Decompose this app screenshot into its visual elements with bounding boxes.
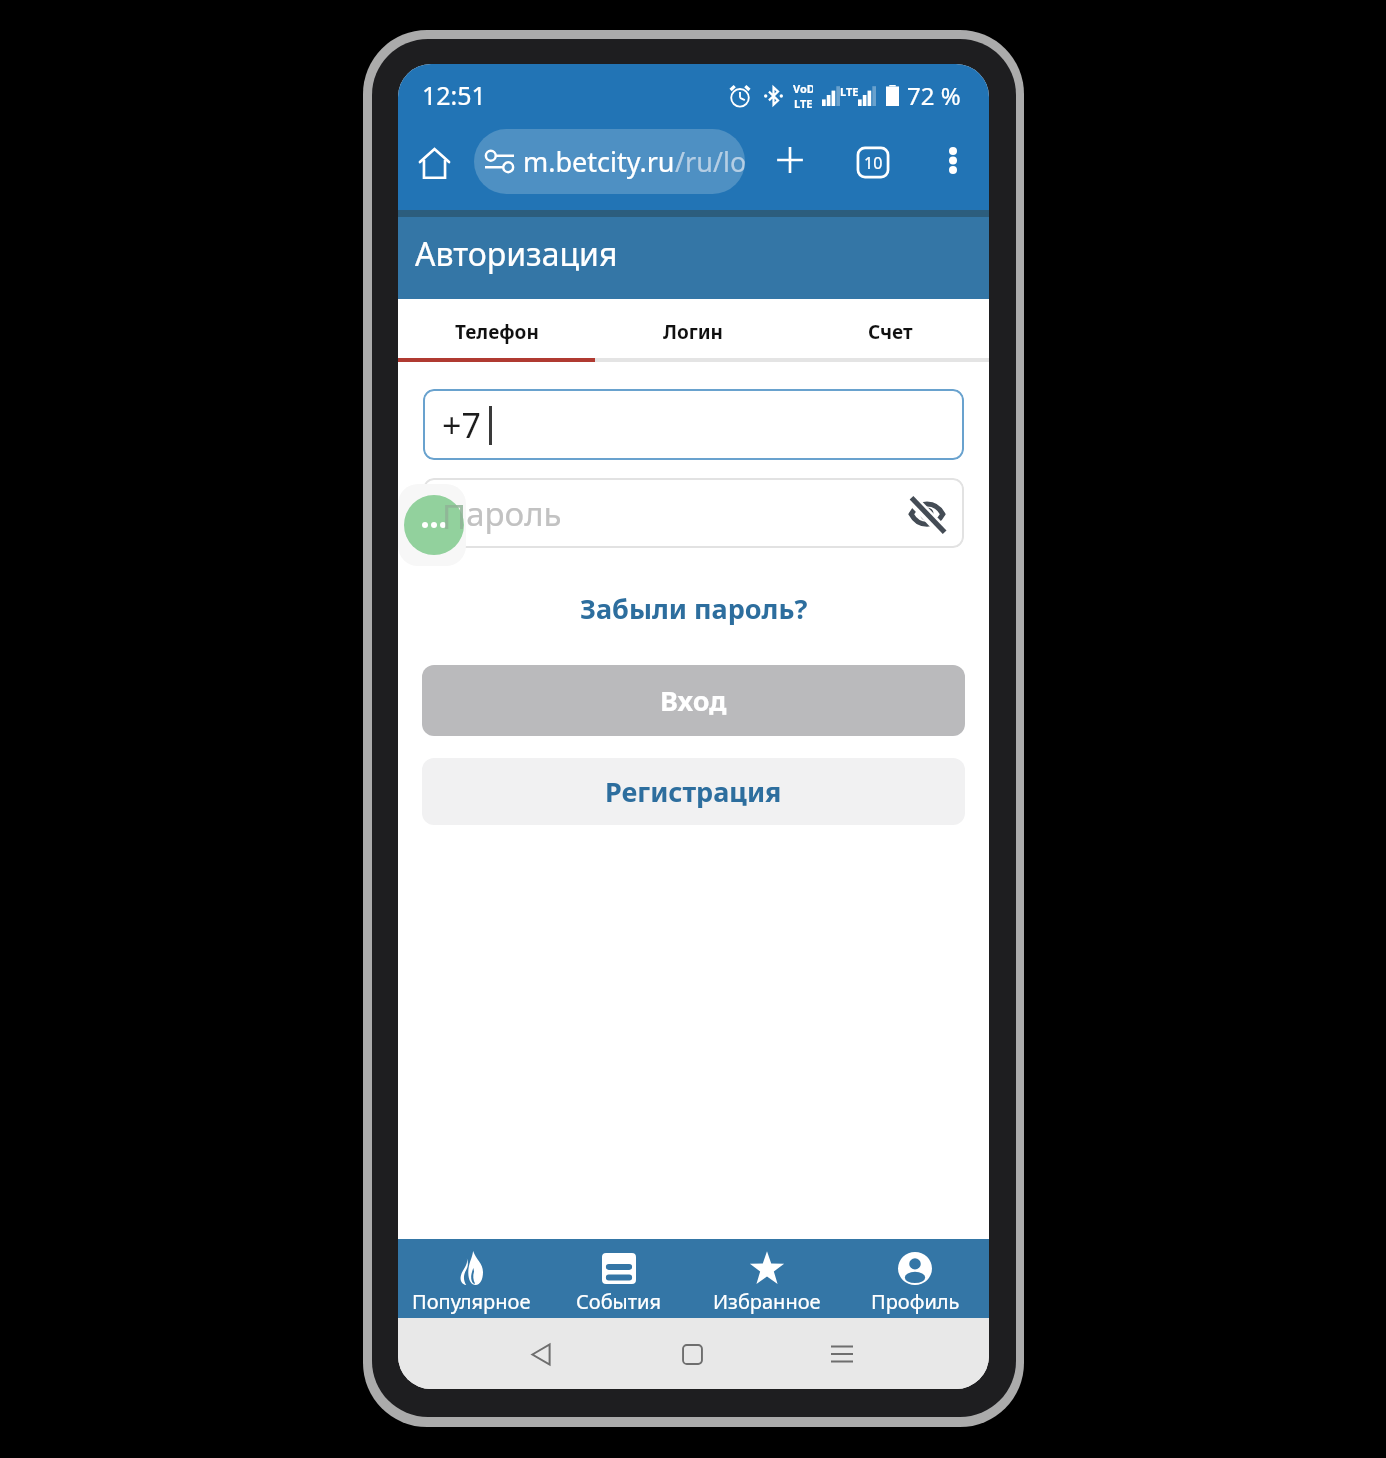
button[interactable]: m.betcity.ru	[474, 129, 745, 194]
button[interactable]: Популярное	[398, 1243, 545, 1315]
button[interactable]: Recent apps	[820, 1332, 864, 1376]
button[interactable]: Избранное	[693, 1243, 841, 1315]
staticText: П	[442, 494, 467, 539]
button[interactable]: Вход	[422, 665, 965, 736]
button[interactable]: События	[545, 1243, 693, 1315]
staticText: LTE	[840, 84, 859, 99]
button[interactable]: More options	[933, 140, 973, 180]
staticText: /ru/lo	[675, 143, 745, 180]
button[interactable]: Регистрация	[422, 758, 965, 825]
button[interactable]: New tab	[768, 140, 812, 184]
staticText: +7	[442, 402, 481, 448]
button[interactable]: Home	[670, 1332, 714, 1376]
staticText: Вход	[660, 682, 727, 719]
staticText: Счет	[868, 319, 913, 345]
button[interactable]: Логин	[595, 299, 792, 362]
staticText: 72 %	[907, 79, 961, 112]
staticText: LTE	[794, 96, 813, 111]
button[interactable]: +7	[423, 389, 964, 460]
staticText: Популярное	[412, 1288, 531, 1315]
button[interactable]: Счет	[792, 299, 989, 362]
button[interactable]: Assistant bubble	[404, 495, 464, 555]
button[interactable]: Show password	[906, 492, 948, 534]
staticText: m.betcity.ru	[523, 143, 675, 180]
staticText: VoD	[793, 81, 813, 96]
button[interactable]: Забыли пароль?	[574, 588, 814, 629]
button[interactable]: Телефон	[398, 299, 595, 362]
staticText: Телефон	[455, 319, 539, 345]
staticText: Профиль	[871, 1288, 960, 1315]
button[interactable]: Back	[519, 1332, 563, 1376]
button[interactable]: Open tabs	[851, 140, 895, 184]
staticText: Избранное	[713, 1288, 821, 1315]
staticText: Регистрация	[605, 773, 782, 810]
staticText: Пароль	[442, 491, 562, 536]
button[interactable]: Пароль	[423, 478, 964, 548]
staticText: 12:51	[422, 78, 486, 112]
button[interactable]: Профиль	[841, 1243, 989, 1315]
staticText: События	[576, 1288, 662, 1315]
button[interactable]: Home	[412, 141, 456, 185]
staticText: Авторизация	[415, 232, 618, 276]
staticText: 10	[864, 152, 883, 174]
staticText: Логин	[663, 319, 724, 345]
